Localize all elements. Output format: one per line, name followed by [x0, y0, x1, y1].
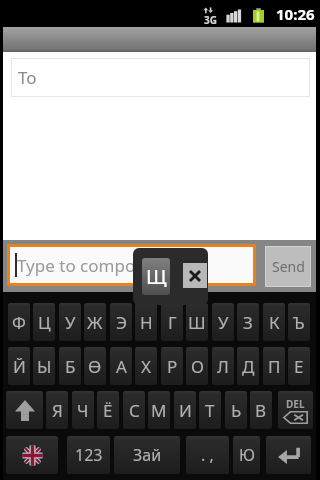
staticText: С: [129, 399, 140, 422]
button[interactable]: Ц: [33, 303, 55, 341]
staticText: Ю: [239, 444, 255, 466]
staticText: Ц: [38, 311, 51, 334]
staticText: Б: [65, 355, 76, 378]
button[interactable]: Enter: [266, 436, 311, 474]
staticText: З: [243, 311, 253, 334]
button[interactable]: Г: [161, 303, 183, 341]
staticText: А: [116, 355, 127, 378]
button[interactable]: Ш: [186, 303, 208, 341]
button[interactable]: З: [237, 303, 259, 341]
button[interactable]: Close: [183, 263, 207, 288]
button[interactable]: Е: [288, 347, 310, 385]
staticText: М: [151, 399, 167, 422]
button[interactable]: Я: [46, 391, 68, 429]
staticText: Т: [205, 399, 215, 422]
button[interactable]: Ф: [8, 303, 30, 341]
button[interactable]: Х: [135, 347, 157, 385]
staticText: Ъ: [293, 311, 305, 334]
button[interactable]: У: [59, 303, 81, 341]
button[interactable]: М: [148, 391, 170, 429]
staticText: П: [268, 355, 281, 378]
staticText: Ө: [88, 355, 102, 378]
staticText: О: [191, 355, 204, 378]
button[interactable]: Н: [135, 303, 157, 341]
button[interactable]: . ,: [186, 436, 229, 474]
staticText: Е: [294, 355, 304, 378]
button[interactable]: О: [186, 347, 208, 385]
button[interactable]: Shift: [6, 391, 43, 429]
button[interactable]: П: [263, 347, 285, 385]
button[interactable]: Б: [59, 347, 81, 385]
button[interactable]: Ж: [84, 303, 106, 341]
button[interactable]: Т: [199, 391, 221, 429]
button[interactable]: Ө: [84, 347, 106, 385]
button[interactable]: Ъ: [288, 303, 310, 341]
staticText: Ё: [103, 399, 113, 422]
staticText: И: [179, 399, 192, 422]
button[interactable]: У: [212, 303, 234, 341]
button[interactable]: Р: [161, 347, 183, 385]
staticText: Send: [272, 257, 305, 276]
staticText: Ж: [87, 311, 103, 334]
staticText: В: [255, 399, 267, 422]
staticText: 3G: [204, 13, 217, 27]
staticText: To: [18, 66, 37, 89]
button[interactable]: К: [263, 303, 285, 341]
button[interactable]: Send: [265, 246, 311, 287]
staticText: Х: [141, 355, 151, 378]
staticText: DEL: [286, 397, 305, 411]
staticText: Д: [242, 355, 255, 378]
button[interactable]: Delete: [278, 391, 313, 429]
button[interactable]: Switch language: [6, 436, 58, 474]
staticText: Ш: [188, 311, 206, 334]
staticText: Ь: [231, 399, 242, 422]
staticText: Г: [168, 311, 177, 334]
button[interactable]: Л: [212, 347, 234, 385]
staticText: Type to compose: [17, 254, 153, 277]
button[interactable]: В: [250, 391, 272, 429]
button[interactable]: С: [123, 391, 145, 429]
staticText: Ч: [77, 399, 89, 422]
button[interactable]: Щ: [142, 258, 170, 295]
button[interactable]: Ь: [225, 391, 247, 429]
staticText: Э: [116, 311, 127, 334]
button[interactable]: Д: [237, 347, 259, 385]
button[interactable]: 123: [67, 436, 110, 474]
button[interactable]: To: [11, 58, 310, 97]
staticText: Ы: [37, 355, 52, 378]
staticText: Зай: [133, 444, 162, 466]
staticText: У: [65, 311, 76, 334]
staticText: Л: [217, 355, 229, 378]
staticText: Ф: [12, 311, 26, 334]
staticText: Н: [140, 311, 153, 334]
button[interactable]: И: [174, 391, 196, 429]
button[interactable]: Ч: [72, 391, 94, 429]
staticText: Я: [52, 399, 63, 422]
button[interactable]: Ю: [233, 436, 260, 474]
button[interactable]: Зай: [114, 436, 180, 474]
button[interactable]: Э: [110, 303, 132, 341]
staticText: 123: [75, 444, 103, 466]
staticText: Щ: [146, 263, 167, 290]
button[interactable]: А: [110, 347, 132, 385]
button[interactable]: Й: [8, 347, 30, 385]
staticText: К: [269, 311, 280, 334]
button[interactable]: Type to compose: [10, 247, 253, 283]
staticText: Й: [13, 355, 26, 378]
button[interactable]: Ё: [97, 391, 119, 429]
button[interactable]: Ы: [33, 347, 55, 385]
staticText: Р: [167, 355, 178, 378]
staticText: 10:26: [276, 4, 315, 24]
staticText: У: [218, 311, 229, 334]
staticText: . ,: [201, 444, 214, 466]
